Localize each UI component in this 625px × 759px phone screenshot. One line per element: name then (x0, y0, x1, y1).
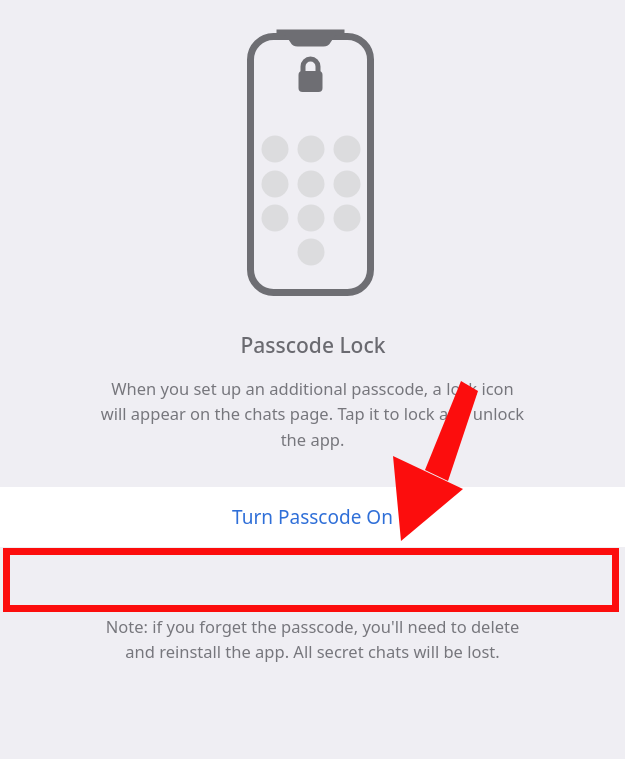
staticText: Turn Passcode On (232, 504, 393, 530)
button[interactable]: Turn Passcode On (0, 487, 625, 547)
staticText: When you set up an additional passcode, … (22, 377, 603, 451)
other: Annotation highlighting Turn Passcode On (0, 0, 625, 759)
staticText: Passcode Lock (240, 331, 386, 360)
staticText: Note: if you forget the passcode, you'll… (16, 615, 609, 663)
